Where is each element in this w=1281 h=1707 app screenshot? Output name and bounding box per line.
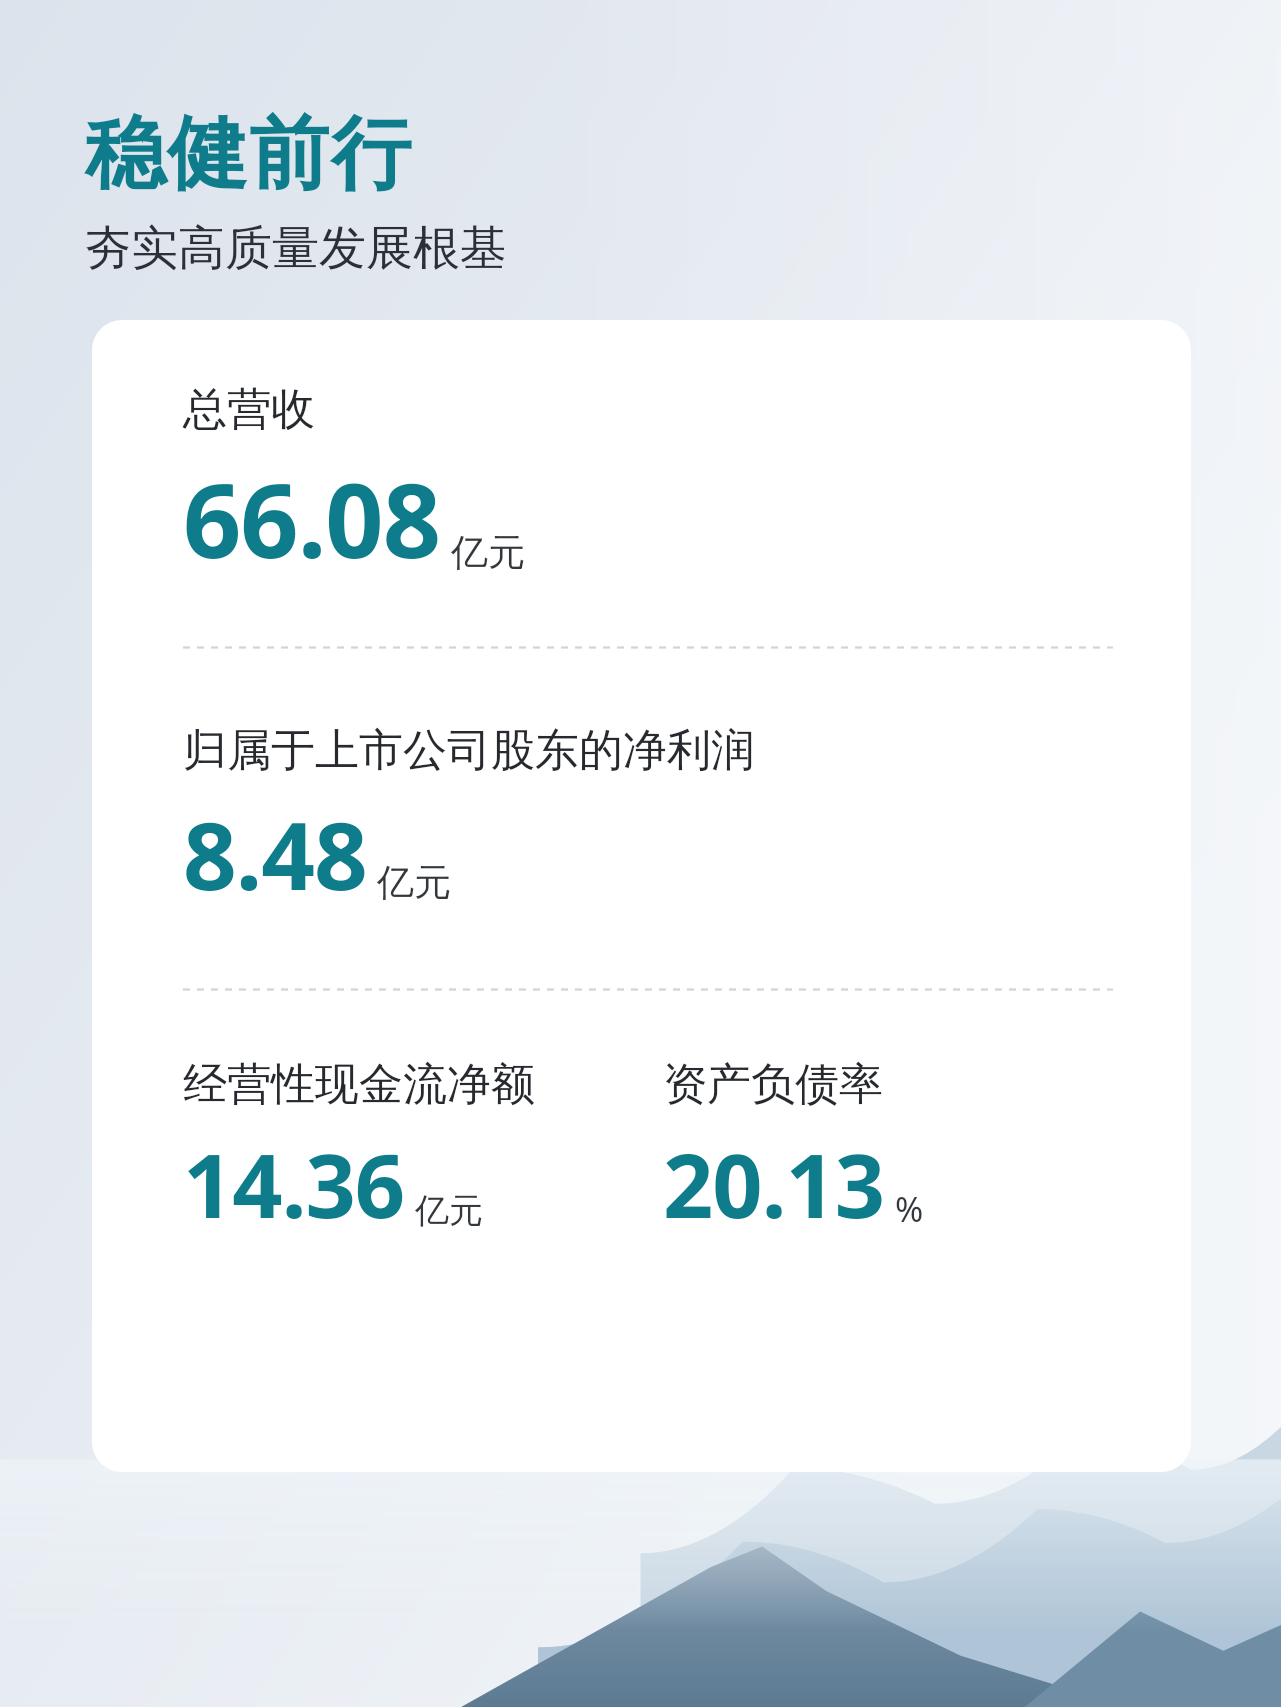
staticText: %: [895, 1186, 924, 1232]
staticText: 经营性现金流净额: [183, 1057, 535, 1112]
staticText: 66.08: [183, 449, 441, 588]
staticText: 亿元: [377, 859, 451, 906]
button[interactable]: 总营收: [92, 320, 1191, 1472]
staticText: 20.13: [663, 1124, 885, 1244]
staticText: 亿元: [451, 529, 525, 576]
staticText: 14.36: [183, 1124, 405, 1244]
staticText: 归属于上市公司股东的净利润: [183, 723, 755, 778]
button[interactable]: 资产负债率: [663, 1057, 924, 1244]
button[interactable]: 总营收: [183, 382, 525, 588]
button[interactable]: 经营性现金流净额: [183, 1057, 535, 1244]
staticText: 总营收: [183, 382, 315, 437]
staticText: 夯实高质量发展根基: [84, 219, 507, 278]
button[interactable]: 归属于上市公司股东的净利润: [183, 723, 755, 918]
staticText: 亿元: [415, 1189, 483, 1232]
staticText: 8.48: [183, 790, 367, 918]
staticText: 资产负债率: [663, 1057, 883, 1112]
button[interactable]: 稳健前行: [84, 104, 412, 205]
